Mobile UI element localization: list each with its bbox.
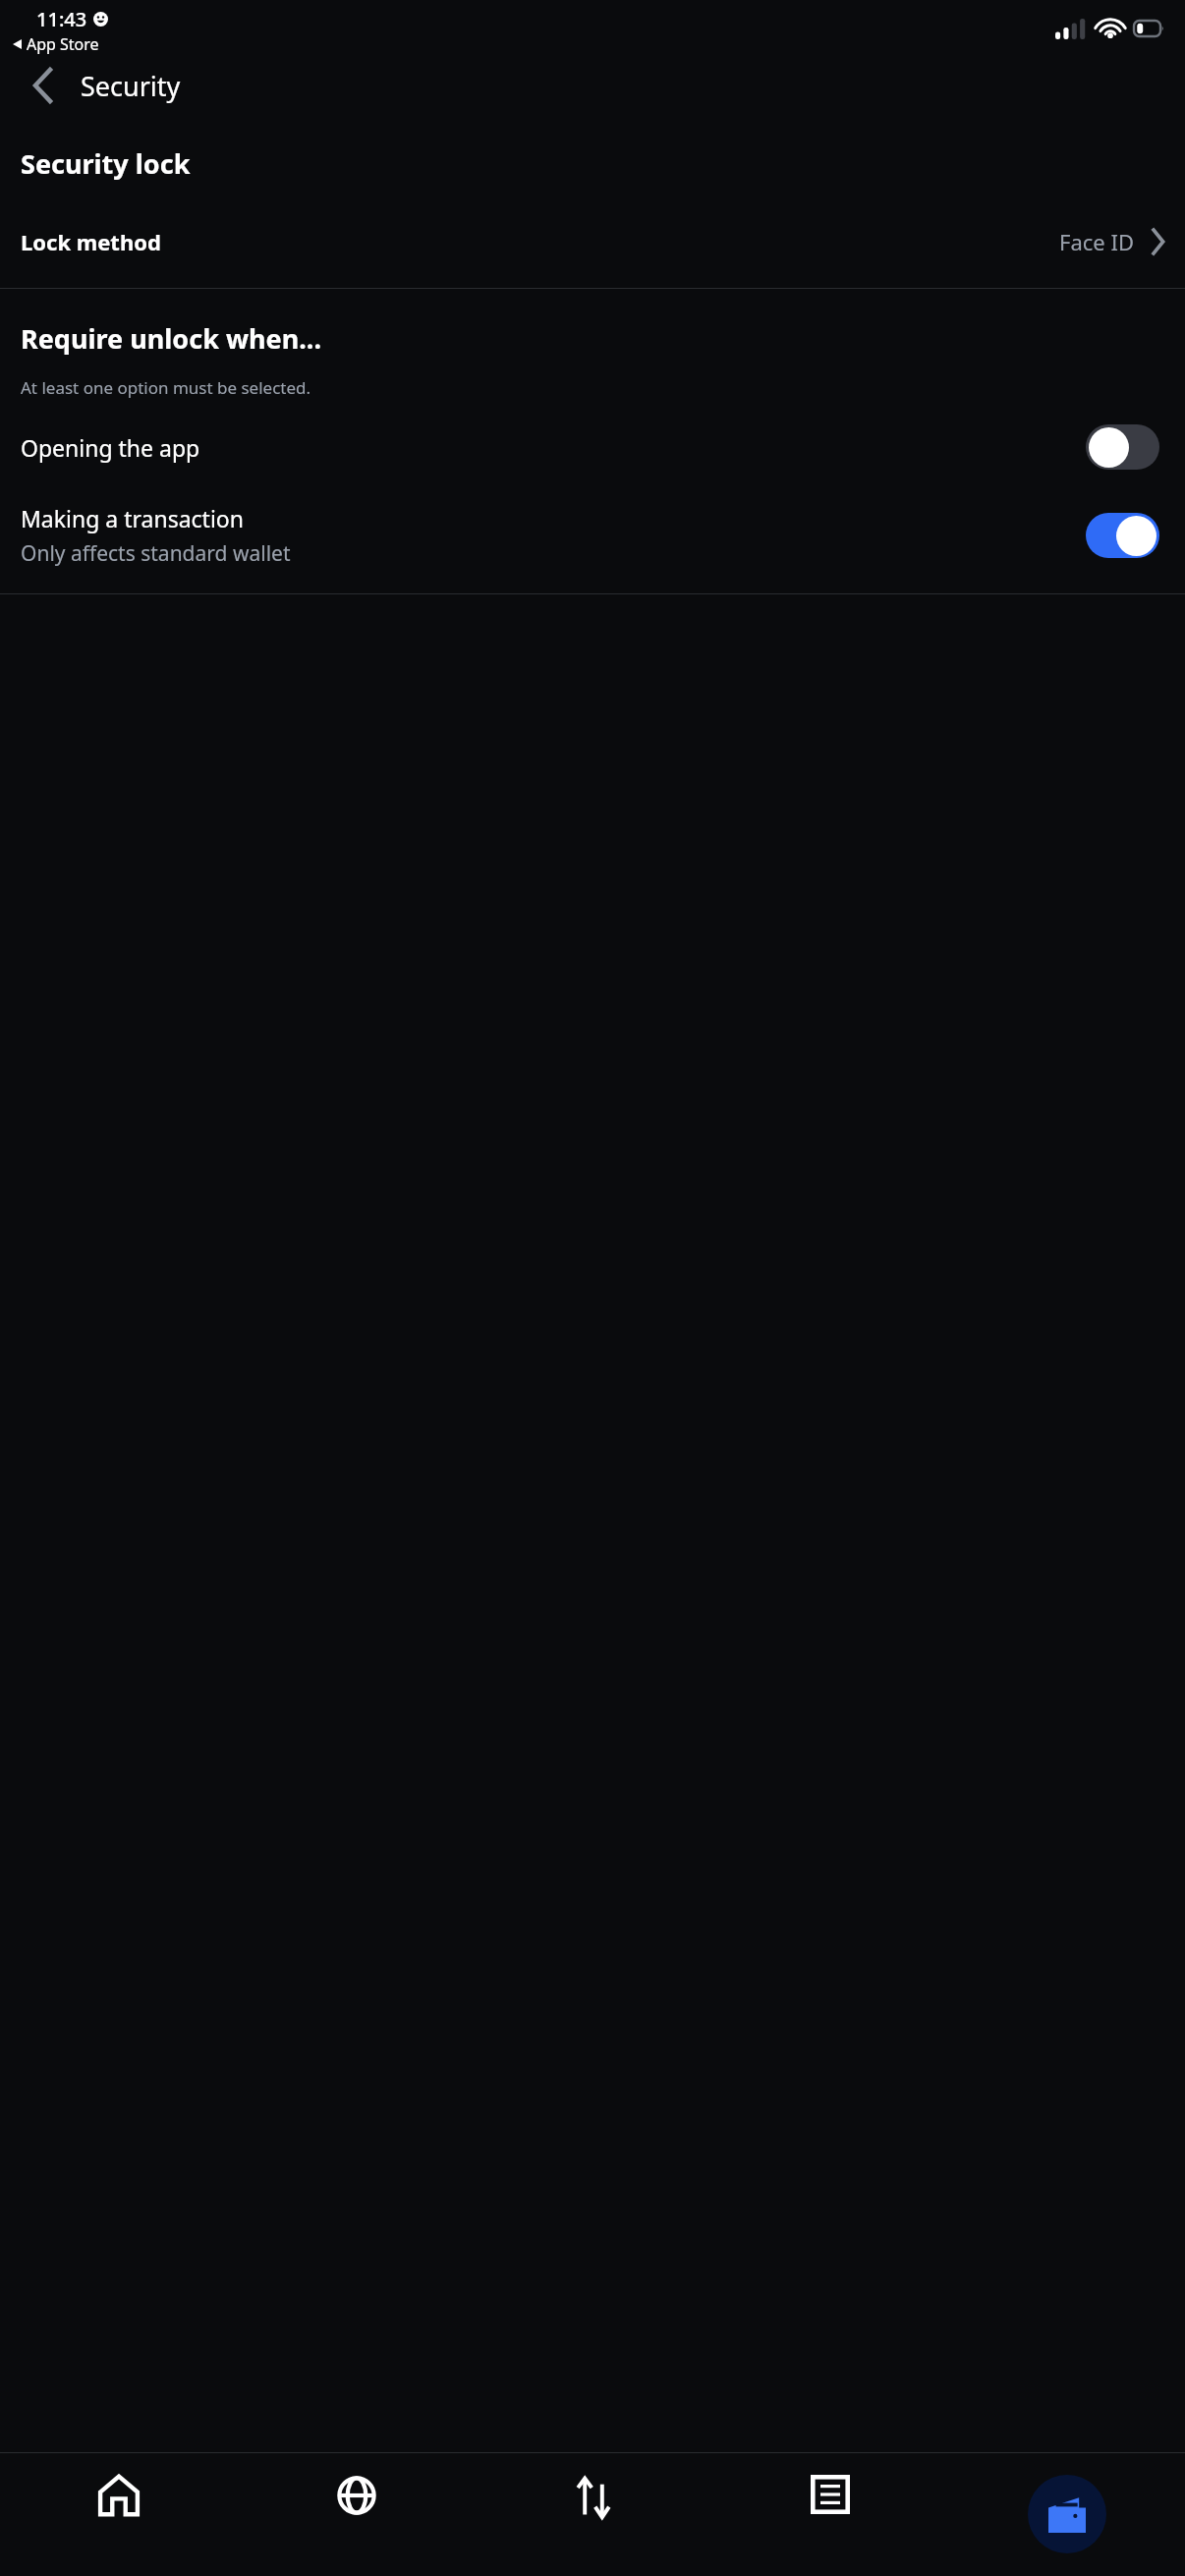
staticText: Only affects standard wallet — [21, 539, 291, 568]
staticText: App Store — [27, 33, 99, 55]
button[interactable]: Making a transaction — [0, 503, 1185, 568]
button[interactable]: Opening the app — [0, 424, 1185, 470]
button[interactable]: Home — [0, 2475, 238, 2563]
staticText: Face ID — [1059, 227, 1134, 256]
button[interactable]: Wallet — [948, 2475, 1185, 2563]
button[interactable]: Swap — [475, 2475, 711, 2563]
staticText: Security lock — [21, 145, 191, 182]
staticText: Security — [81, 68, 181, 104]
staticText: Lock method — [21, 227, 161, 256]
button[interactable]: Activity — [711, 2475, 948, 2563]
button[interactable]: Lock method — [0, 221, 1185, 262]
staticText: Require unlock when... — [21, 320, 321, 357]
staticText: Opening the app — [21, 432, 200, 463]
staticText: Making a transaction — [21, 503, 244, 533]
staticText: 11:43 — [36, 6, 87, 32]
button[interactable]: Browser — [238, 2475, 475, 2563]
staticText: At least one option must be selected. — [21, 376, 311, 399]
button[interactable]: Back — [18, 60, 69, 111]
